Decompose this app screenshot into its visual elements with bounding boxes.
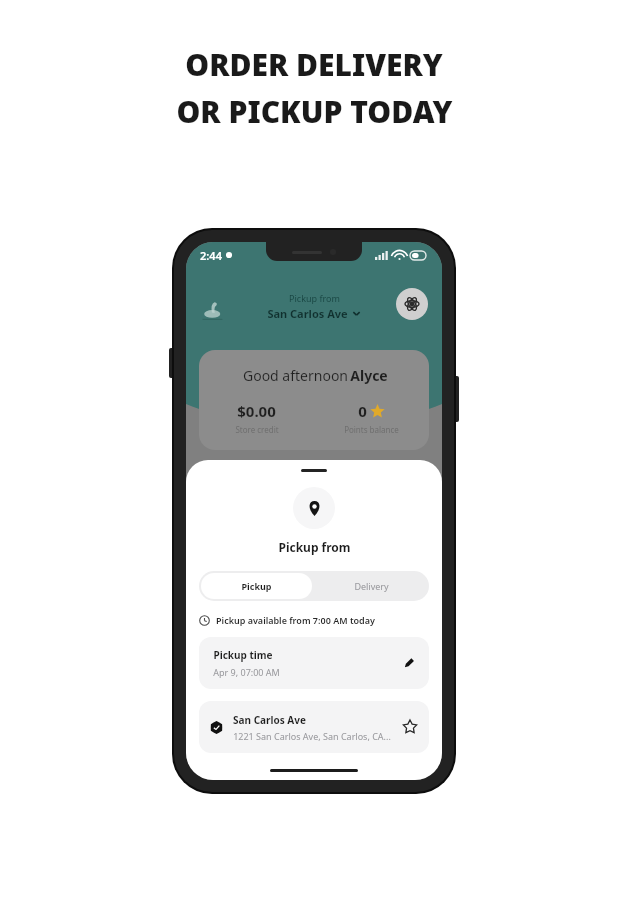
staticText: Points balance xyxy=(344,424,399,435)
staticText: OR PICKUP TODAY xyxy=(176,91,453,132)
staticText: San Carlos Ave xyxy=(267,306,348,321)
staticText: Pickup from xyxy=(278,539,351,555)
button[interactable]: Pickup time xyxy=(199,637,429,689)
staticText: Good afternoon xyxy=(241,366,350,385)
staticText: Delivery xyxy=(354,580,389,592)
staticText: Pickup from xyxy=(289,292,340,304)
staticText: Pickup xyxy=(241,580,272,592)
staticText: Pickup time xyxy=(213,648,273,662)
button[interactable]: Pickup xyxy=(201,573,312,599)
staticText: $0.00 xyxy=(237,401,276,421)
staticText: Apr 9, 07:00 AM xyxy=(213,666,280,678)
button[interactable]: Delivery xyxy=(314,571,429,601)
button[interactable]: Good afternoon xyxy=(199,350,429,450)
staticText: ORDER DELIVERY xyxy=(185,44,443,85)
staticText: 0 xyxy=(358,401,367,421)
staticText: 1221 San Carlos Ave, San Carlos, CA... xyxy=(233,730,391,742)
other: Edit pickup time xyxy=(402,657,415,670)
staticText: Store credit xyxy=(235,424,279,435)
staticText: San Carlos Ave xyxy=(233,713,306,727)
button[interactable]: San Carlos Ave xyxy=(199,701,429,753)
button[interactable]: Scan code xyxy=(396,288,428,320)
staticText: Alyce xyxy=(350,366,388,385)
other: Favorite xyxy=(403,720,417,734)
staticText: 2:44 xyxy=(200,248,222,263)
staticText: Pickup available from 7:00 AM today xyxy=(216,614,375,626)
